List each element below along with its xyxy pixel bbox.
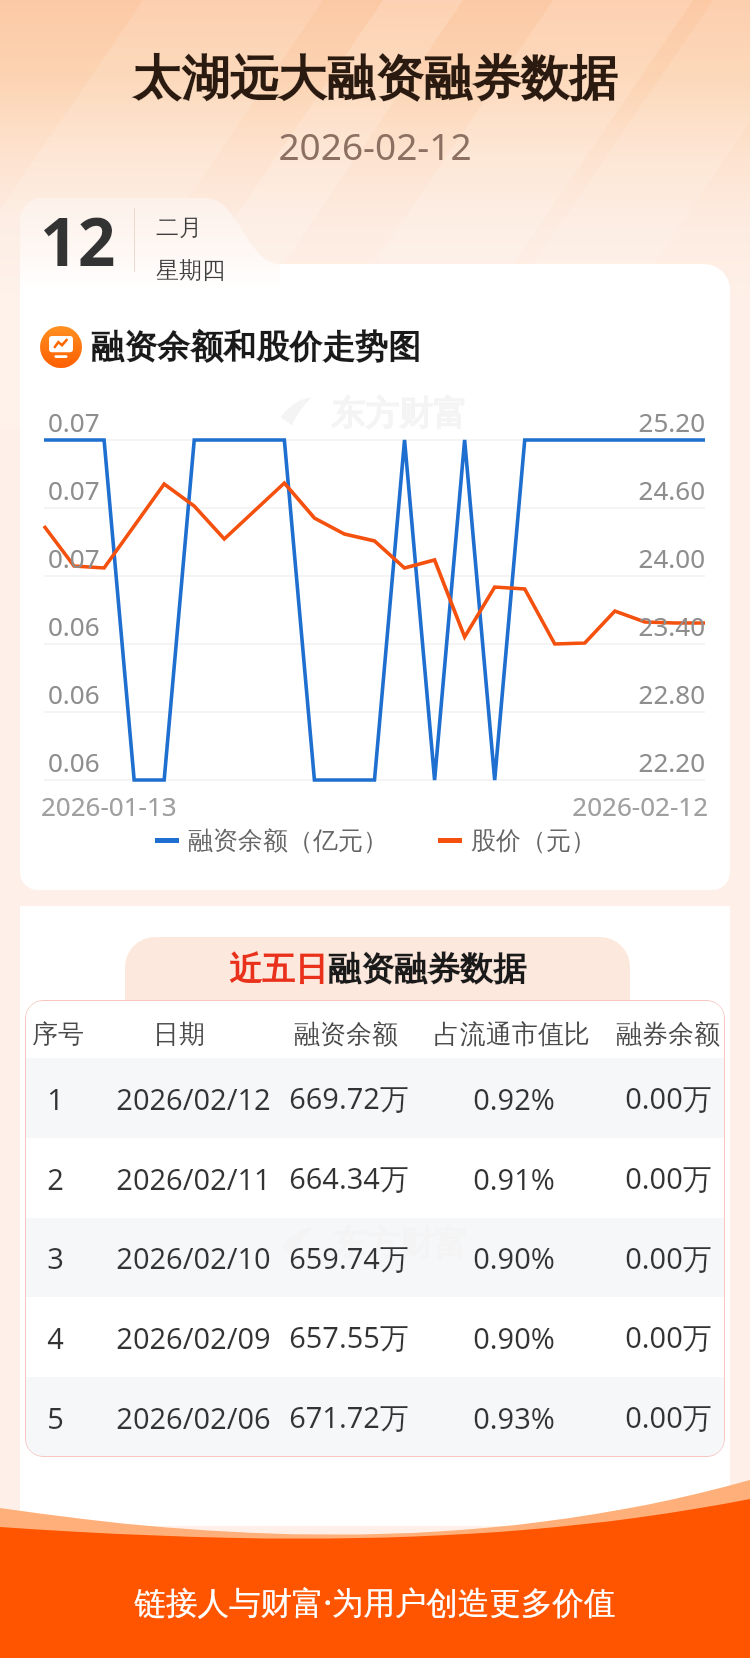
staticText: 近五日 (229, 948, 328, 990)
staticText: 0.91% (473, 1159, 555, 1198)
staticText: 0.00万 (625, 1078, 712, 1118)
staticText: 25.20 (565, 404, 705, 439)
staticText: 融资余额 (294, 1018, 398, 1051)
staticText: 星期四 (156, 256, 225, 285)
staticText: 2026-02-12 (0, 120, 750, 170)
staticText: 二月 (156, 213, 202, 242)
staticText: 融券余额 (616, 1018, 720, 1051)
staticText: 5 (47, 1398, 64, 1437)
staticText: 链接人与财富·为用户创造更多价值 (0, 1580, 750, 1623)
staticText: 3 (47, 1238, 64, 1277)
staticText: 0.90% (473, 1238, 555, 1277)
staticText: 股价（元） (471, 825, 596, 856)
staticText: 0.06 (48, 676, 100, 711)
staticText: 太湖远大融资融券数据 (0, 48, 750, 109)
staticText: 2026/02/11 (116, 1159, 271, 1198)
staticText: 东方财富 (331, 392, 467, 435)
staticText: 2026/02/12 (116, 1079, 271, 1118)
staticText: 664.34万 (289, 1158, 409, 1198)
staticText: 1 (47, 1079, 64, 1118)
staticText: 2026/02/10 (116, 1238, 271, 1277)
staticText: 23.40 (565, 608, 705, 643)
staticText: 0.00万 (625, 1317, 712, 1357)
staticText: 东方财富 (332, 1222, 468, 1265)
staticText: 22.20 (565, 744, 705, 779)
staticText: 融资余额和股价走势图 (91, 326, 421, 368)
staticText: 0.07 (48, 404, 100, 439)
staticText: 669.72万 (289, 1078, 409, 1118)
staticText: 融资余额（亿元） (188, 825, 388, 856)
staticText: 0.00万 (625, 1158, 712, 1198)
staticText: 24.00 (565, 540, 705, 575)
staticText: 0.07 (48, 472, 100, 507)
staticText: 2026/02/09 (116, 1318, 271, 1357)
staticText: 659.74万 (289, 1238, 409, 1278)
staticText: 0.92% (473, 1079, 555, 1118)
button[interactable]: 融资余额和股价走势图 (40, 326, 421, 368)
staticText: 序号 (32, 1018, 84, 1051)
staticText: 日期 (153, 1018, 205, 1051)
staticText: 0.00万 (625, 1238, 712, 1278)
staticText: 2026-02-12 (505, 788, 708, 823)
staticText: 24.60 (565, 472, 705, 507)
staticText: 0.06 (48, 608, 100, 643)
staticText: 0.07 (48, 540, 100, 575)
staticText: 0.93% (473, 1398, 555, 1437)
staticText: 0.00万 (625, 1397, 712, 1437)
staticText: 12 (40, 195, 116, 267)
staticText: 22.80 (565, 676, 705, 711)
staticText: 4 (47, 1318, 64, 1357)
staticText: 657.55万 (289, 1317, 409, 1357)
staticText: 2 (47, 1159, 64, 1198)
staticText: 2026/02/06 (116, 1398, 271, 1437)
staticText: 0.90% (473, 1318, 555, 1357)
staticText: 占流通市值比 (434, 1018, 590, 1051)
staticText: 0.06 (48, 744, 100, 779)
staticText: 2026-01-13 (41, 788, 241, 823)
staticText: 671.72万 (289, 1397, 409, 1437)
staticText: 融资融券数据 (328, 948, 526, 990)
